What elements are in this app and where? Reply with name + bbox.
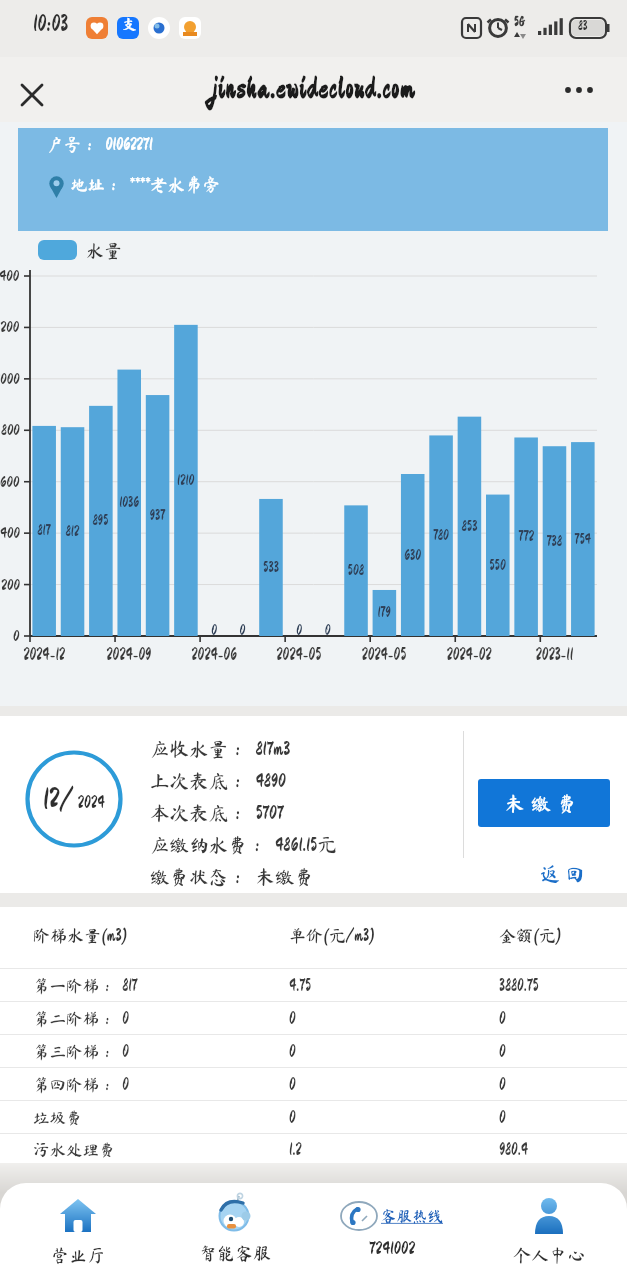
staticText: 应缴纳水费： 4861.15元 [150, 835, 337, 854]
button[interactable]: 第四阶梯： 0 [0, 1068, 627, 1100]
button[interactable]: 智能客服 [156, 1192, 313, 1280]
staticText: 980.4 [499, 1141, 528, 1157]
staticText: 水量 [86, 241, 122, 259]
staticText: 0 [499, 1109, 506, 1125]
button[interactable]: 污水处理费 [0, 1134, 627, 1163]
button[interactable]: 返回 [530, 856, 600, 890]
button[interactable]: 垃圾费 [0, 1101, 627, 1133]
button[interactable]: 个人中心 [470, 1196, 627, 1280]
staticText: 缴费状态： 未缴费 [150, 867, 314, 886]
staticText: 0 [289, 1076, 296, 1092]
staticText: 83 [578, 20, 588, 33]
staticText: 4.75 [289, 977, 312, 993]
button[interactable]: 第三阶梯： 0 [0, 1035, 627, 1067]
staticText: 0 [499, 1076, 506, 1092]
staticText: 应收水量： 817m3 [150, 739, 291, 758]
staticText: 未缴费 [505, 793, 583, 813]
button[interactable] [556, 69, 604, 109]
staticText: 户号： 01062271 [46, 136, 153, 153]
staticText: 垃圾费 [33, 1109, 83, 1125]
staticText: 0 [289, 1010, 296, 1026]
button[interactable]: 第二阶梯： 0 [0, 1002, 627, 1034]
button[interactable]: 未缴费 [478, 779, 610, 827]
staticText: jinsha.ewidecloud.com [212, 74, 416, 102]
staticText: 金额(元) [499, 927, 562, 944]
staticText: 地址： ****老水井旁 [70, 176, 221, 193]
staticText: 0 [499, 1043, 506, 1059]
staticText: 污水处理费 [33, 1141, 116, 1157]
staticText: 阶梯水量(m3) [33, 927, 128, 944]
staticText: 1.2 [289, 1141, 302, 1157]
staticText: 上次表底： 4890 [150, 771, 286, 790]
button[interactable]: 客服热线 [313, 1196, 470, 1280]
staticText: 3880.75 [499, 977, 539, 993]
staticText: 第三阶梯： 0 [33, 1043, 129, 1059]
staticText: 营业厅 [51, 1246, 105, 1264]
staticText: 10:03 [33, 13, 69, 35]
staticText: 本次表底： 5707 [150, 803, 284, 822]
staticText: 支 [122, 17, 138, 32]
staticText: 12/ [43, 785, 74, 813]
staticText: 个人中心 [513, 1246, 585, 1264]
staticText: 0 [289, 1109, 296, 1125]
staticText: 第一阶梯： 817 [33, 977, 138, 993]
staticText: 返回 [540, 863, 590, 883]
staticText: 5G [514, 16, 525, 29]
staticText: 智能客服 [199, 1244, 271, 1262]
staticText: 第二阶梯： 0 [33, 1010, 129, 1026]
staticText: 0 [499, 1010, 506, 1026]
staticText: 0 [289, 1043, 296, 1059]
staticText: 2024 [74, 794, 105, 811]
button[interactable] [12, 79, 52, 119]
staticText: 客服热线 [381, 1208, 444, 1224]
staticText: 7241002 [369, 1239, 415, 1257]
button[interactable]: 营业厅 [0, 1196, 156, 1280]
staticText: 第四阶梯： 0 [33, 1076, 129, 1092]
staticText: 单价(元/m3) [289, 927, 375, 944]
button[interactable]: 第一阶梯： 817 [0, 969, 627, 1001]
